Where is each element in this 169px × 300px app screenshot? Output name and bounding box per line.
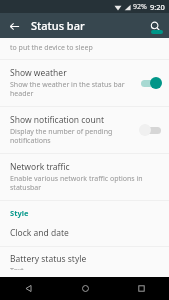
button[interactable]: Toggle on xyxy=(139,76,163,90)
button[interactable]: Back xyxy=(4,16,24,36)
button[interactable]: to put the device to sleep xyxy=(0,38,169,59)
staticText: 9:20 xyxy=(150,2,165,12)
staticText: Display the number of pending notificati… xyxy=(10,127,135,145)
staticText: Network traffic xyxy=(10,161,70,173)
staticText: Show the weather in the status bar heade… xyxy=(10,80,135,98)
button[interactable]: Toggle off xyxy=(139,123,163,137)
staticText: Clock and date xyxy=(10,227,69,239)
staticText: Status bar xyxy=(31,18,85,33)
staticText: Battery status style xyxy=(10,253,87,265)
staticText: Style xyxy=(10,208,29,218)
staticText: to put the device to sleep xyxy=(10,43,93,53)
button[interactable]: Show notification count xyxy=(0,107,169,153)
staticText: Text xyxy=(10,266,24,270)
staticText: 92% xyxy=(133,2,147,12)
button[interactable]: Show weather xyxy=(0,60,169,106)
button[interactable]: Recent apps xyxy=(113,277,169,300)
button[interactable]: Home xyxy=(57,277,113,300)
staticText: Show weather xyxy=(10,67,67,79)
button[interactable]: Search xyxy=(145,16,165,36)
staticText: Enable various network traffic options i… xyxy=(10,174,163,192)
button[interactable]: Back xyxy=(0,277,57,300)
staticText: Show notification count xyxy=(10,114,105,126)
button[interactable]: Network traffic xyxy=(0,154,169,200)
button[interactable]: Battery status style xyxy=(0,247,169,277)
button[interactable]: Clock and date xyxy=(0,221,169,246)
